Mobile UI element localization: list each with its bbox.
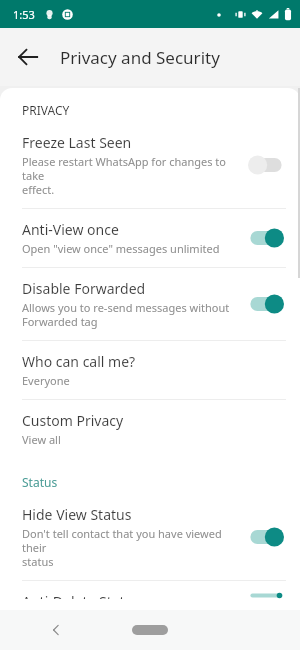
staticText: Hide View Status [22, 505, 132, 524]
button[interactable]: Anti-View once [0, 209, 300, 267]
button[interactable]: Back [8, 37, 48, 77]
button[interactable]: Toggle off [246, 153, 286, 177]
staticText: Anti-Delete Status [22, 592, 140, 599]
button[interactable]: Toggle on [246, 525, 286, 549]
staticText: View all [22, 432, 61, 447]
staticText: Everyone [22, 373, 70, 388]
staticText: Allows you to re-send messages without F… [22, 300, 230, 329]
button[interactable]: Anti-Delete Status [0, 581, 300, 610]
staticText: Disable Forwarded [22, 279, 146, 298]
button[interactable]: Hide View Status [0, 494, 300, 580]
staticText: 1:53 [13, 7, 35, 22]
staticText: Anti-View once [22, 220, 119, 239]
button[interactable]: Freeze Last Seen [0, 122, 300, 208]
button[interactable]: Home [132, 625, 168, 635]
staticText: Don't tell contact that you have viewed … [22, 526, 240, 569]
staticText: Who can call me? [22, 352, 136, 371]
staticText: Privacy and Security [60, 46, 220, 69]
staticText: Freeze Last Seen [22, 133, 132, 152]
button[interactable]: Back [42, 616, 70, 644]
staticText: Status [22, 474, 58, 490]
staticText: Please restart WhatsApp for changes to t… [22, 154, 240, 197]
button[interactable]: Custom Privacy [0, 400, 300, 458]
staticText: Custom Privacy [22, 411, 124, 430]
staticText: PRIVACY [22, 102, 70, 118]
button[interactable]: Toggle on [246, 592, 286, 599]
button[interactable]: Disable Forwarded [0, 268, 300, 340]
button[interactable]: Toggle on [246, 226, 286, 250]
button[interactable]: Toggle on [246, 292, 286, 316]
button[interactable]: Who can call me? [0, 341, 300, 399]
staticText: Open "view once" messages unlimited [22, 241, 220, 256]
